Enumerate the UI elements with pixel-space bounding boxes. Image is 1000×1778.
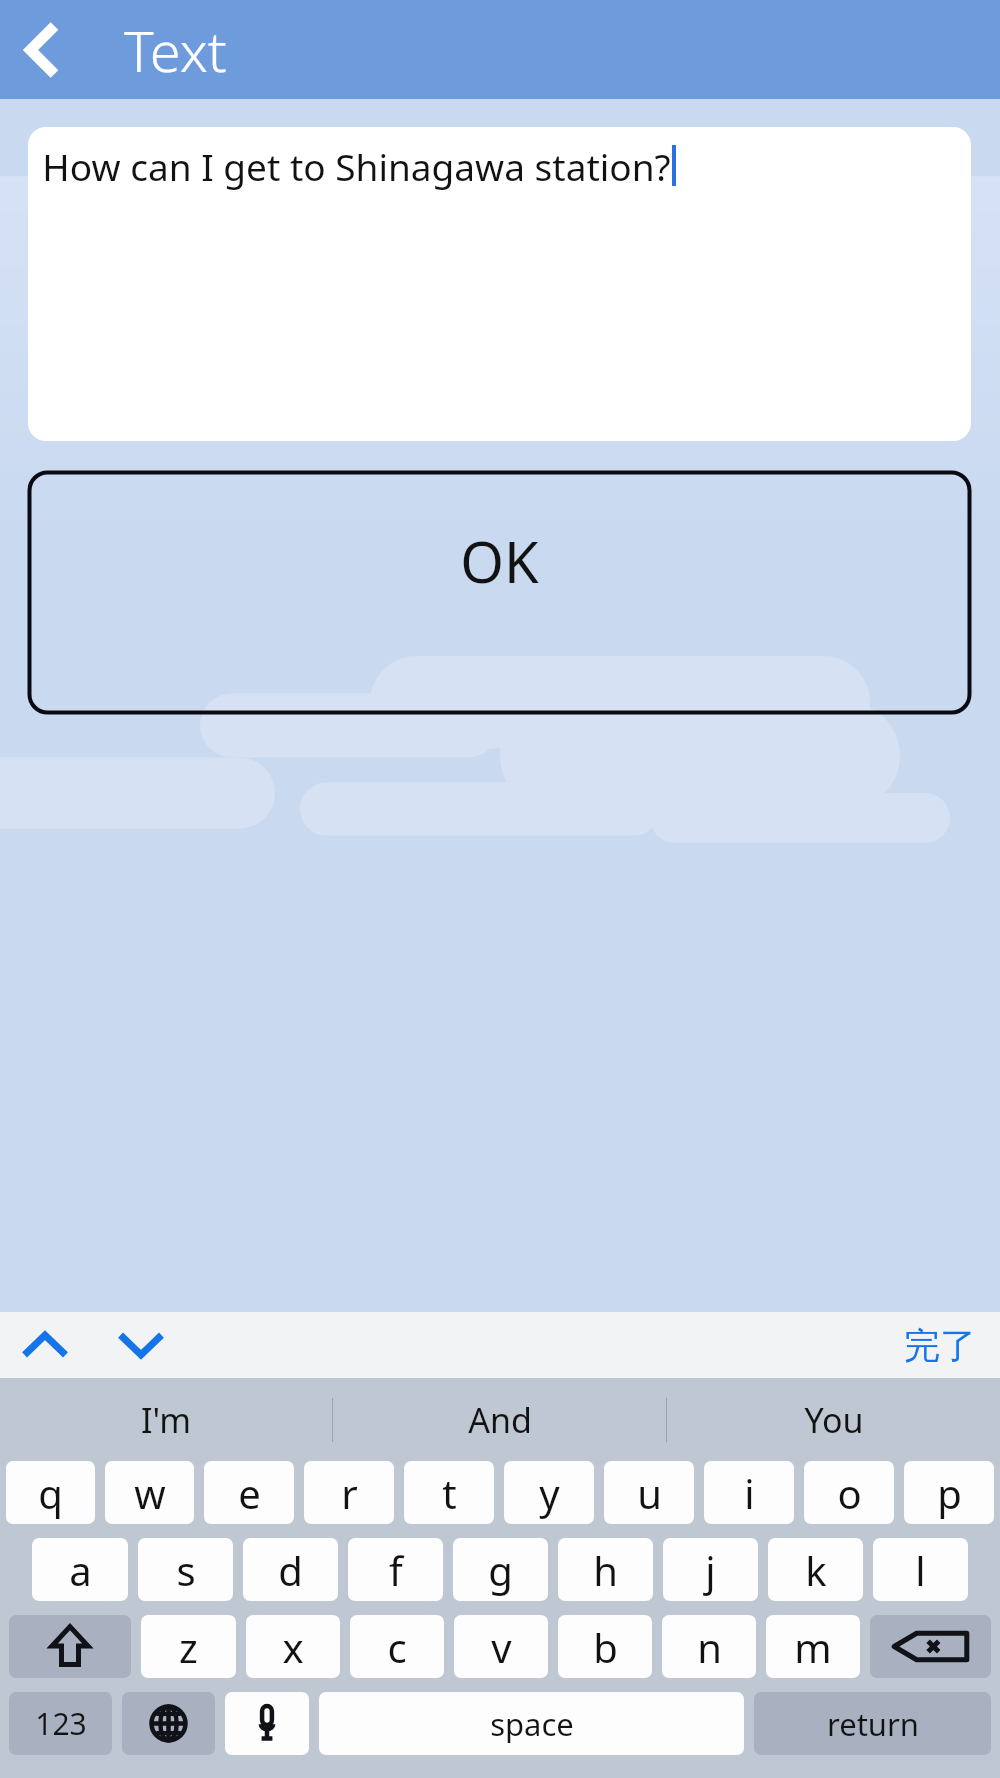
staticText: z [179,1620,198,1674]
button[interactable]: n [662,1615,756,1678]
button[interactable]: Change keyboard [122,1692,215,1755]
button[interactable]: Previous field [14,1316,76,1374]
staticText: t [442,1466,457,1520]
staticText: p [937,1466,962,1520]
button[interactable]: h [558,1538,653,1601]
staticText: Text [124,12,227,88]
button[interactable]: d [243,1538,338,1601]
button[interactable]: 123 [9,1692,112,1755]
staticText: o [837,1466,862,1520]
staticText: return [827,1703,919,1745]
button[interactable]: How can I get to Shinagawa station? [28,127,971,441]
staticText: i [744,1466,755,1520]
button[interactable]: y [504,1461,594,1524]
staticText: k [805,1543,827,1597]
button[interactable]: l [873,1538,968,1601]
staticText: You [804,1397,864,1443]
staticText: h [593,1543,618,1597]
button[interactable]: j [663,1538,758,1601]
button[interactable]: f [348,1538,443,1601]
button[interactable]: k [768,1538,863,1601]
staticText: m [794,1620,832,1674]
button[interactable]: q [6,1461,95,1524]
button[interactable]: i [704,1461,794,1524]
button[interactable]: a [32,1538,128,1601]
button[interactable]: o [804,1461,894,1524]
staticText: l [915,1543,926,1597]
staticText: v [491,1620,512,1674]
staticText: 完了 [904,1323,976,1368]
staticText: s [176,1543,196,1597]
button[interactable]: p [904,1461,994,1524]
button[interactable]: t [404,1461,494,1524]
button[interactable]: m [766,1615,860,1678]
button[interactable]: And [333,1378,666,1461]
staticText: r [341,1466,358,1520]
staticText: y [539,1466,560,1520]
button[interactable]: Backspace [870,1615,991,1678]
staticText: OK [460,523,539,591]
staticText: And [468,1397,532,1443]
button[interactable]: Next field [110,1316,172,1374]
button[interactable]: x [246,1615,340,1678]
staticText: j [705,1543,716,1597]
staticText: e [238,1466,261,1520]
button[interactable]: z [141,1615,236,1678]
button[interactable]: g [453,1538,548,1601]
staticText: g [488,1543,513,1597]
staticText: c [387,1620,407,1674]
button[interactable]: r [304,1461,394,1524]
staticText: b [593,1620,618,1674]
staticText: space [490,1703,574,1745]
button[interactable]: Back [8,10,72,90]
staticText: f [389,1543,403,1597]
button[interactable]: I'm [0,1378,332,1461]
staticText: a [69,1543,92,1597]
staticText: d [278,1543,303,1597]
button[interactable]: w [105,1461,194,1524]
button[interactable]: 完了 [896,1317,984,1374]
button[interactable]: Dictation [225,1692,309,1755]
button[interactable]: b [558,1615,652,1678]
staticText: I'm [141,1397,191,1443]
button[interactable]: e [204,1461,294,1524]
button[interactable]: v [454,1615,548,1678]
staticText: 123 [35,1703,87,1744]
button[interactable]: s [138,1538,233,1601]
staticText: How can I get to Shinagawa station? [42,141,671,191]
button[interactable]: u [604,1461,694,1524]
button[interactable]: c [350,1615,444,1678]
button[interactable]: You [667,1378,1000,1461]
button[interactable]: return [754,1692,991,1755]
staticText: q [38,1466,63,1520]
staticText: n [697,1620,722,1674]
button[interactable]: Shift [9,1615,131,1678]
button[interactable]: OK [28,471,971,591]
button[interactable]: space [319,1692,744,1755]
staticText: u [637,1466,662,1520]
staticText: x [282,1620,304,1674]
staticText: w [134,1466,166,1520]
